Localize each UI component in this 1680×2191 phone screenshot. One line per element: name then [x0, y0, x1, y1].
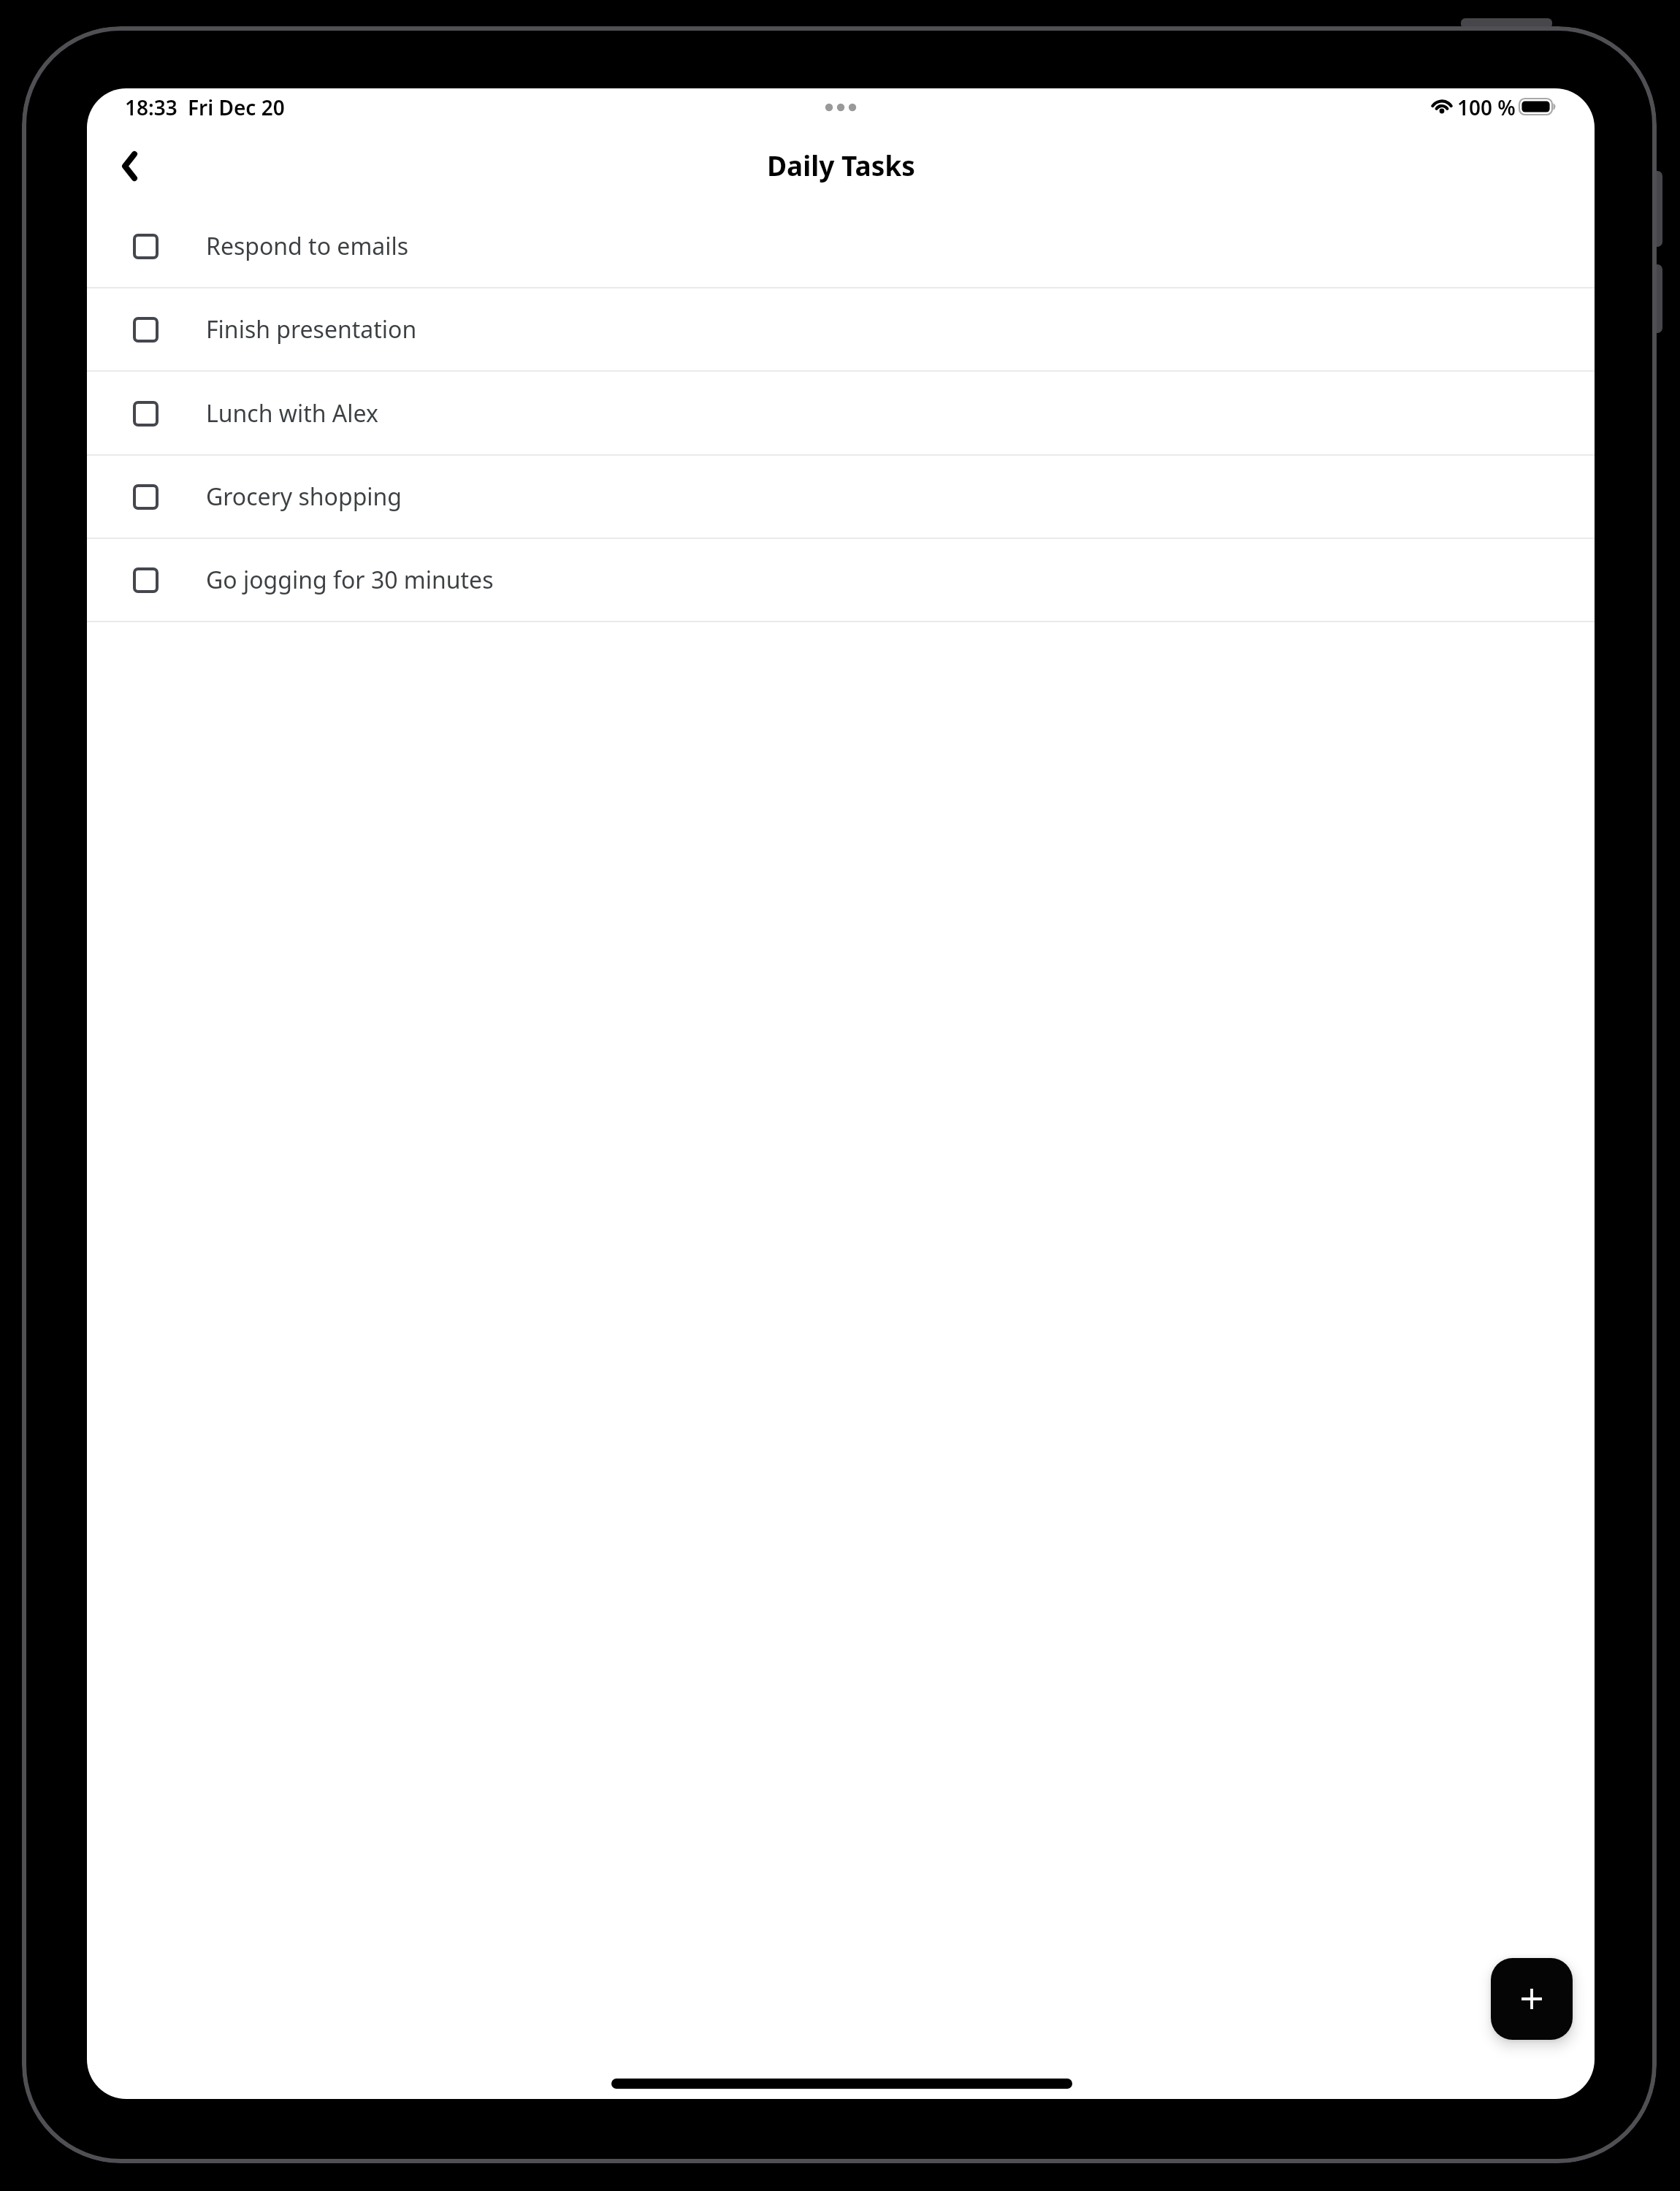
staticText: Respond to emails	[206, 230, 409, 262]
staticText: Fri Dec 20	[188, 93, 285, 121]
button[interactable]: Finish presentation	[87, 288, 1595, 371]
button[interactable]: Respond to emails	[87, 204, 1595, 288]
staticText: Go jogging for 30 minutes	[206, 564, 494, 596]
button[interactable]	[1491, 1958, 1573, 2040]
staticText: 18:33	[125, 93, 177, 121]
button[interactable]: Grocery shopping	[87, 455, 1595, 538]
staticText: Finish presentation	[206, 313, 417, 345]
button[interactable]	[109, 138, 153, 194]
staticText: Lunch with Alex	[206, 397, 378, 429]
staticText: Grocery shopping	[206, 481, 402, 513]
staticText: Daily Tasks	[767, 147, 915, 183]
button[interactable]: Lunch with Alex	[87, 372, 1595, 455]
staticText: 100 %	[1457, 93, 1516, 121]
button[interactable]: Go jogging for 30 minutes	[87, 538, 1595, 622]
